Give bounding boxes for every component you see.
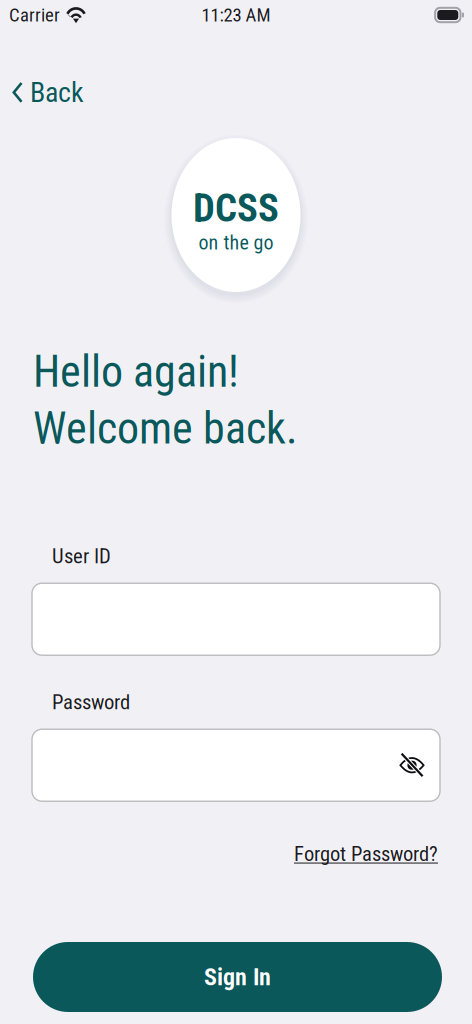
staticText: on the go <box>198 231 273 254</box>
staticText: Hello again! <box>33 346 239 398</box>
staticText: Back <box>30 76 84 109</box>
staticText: Carrier <box>9 4 60 26</box>
staticText: Password <box>52 690 130 714</box>
staticText: 11:23 AM <box>201 4 270 26</box>
staticText: Sign In <box>204 963 271 991</box>
button[interactable]: Sign In <box>33 942 442 1012</box>
button[interactable]: Forgot Password? <box>294 838 438 870</box>
staticText: User ID <box>52 544 111 568</box>
staticText: DCSS <box>193 186 279 231</box>
button[interactable]: Back <box>0 68 96 117</box>
staticText: Forgot Password? <box>294 842 438 866</box>
button[interactable]: Show password <box>399 739 440 791</box>
staticText: Welcome back. <box>33 403 298 454</box>
